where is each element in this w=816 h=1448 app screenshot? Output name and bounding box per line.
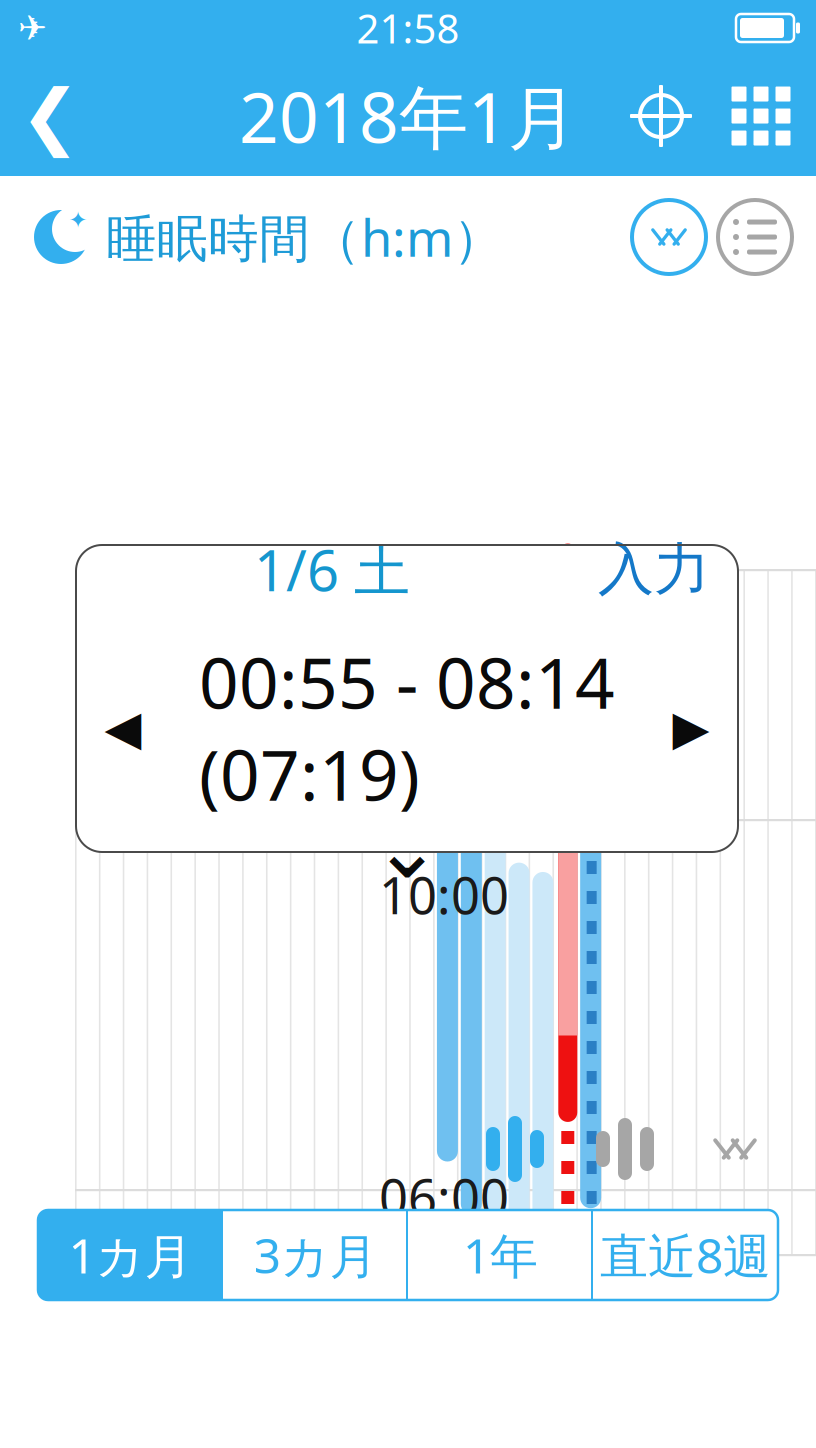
button[interactable]: Back [0, 56, 100, 176]
staticText: 1年 [463, 1223, 538, 1287]
button[interactable]: Grid [706, 56, 816, 176]
staticText: 21:58 [356, 1, 459, 54]
staticText: 直近8週 [600, 1223, 771, 1287]
button[interactable]: Line chart [680, 1109, 790, 1189]
button[interactable]: 3カ月 [223, 1210, 408, 1300]
staticText: 06:00 [379, 1163, 509, 1230]
staticText: 1/6 土 [254, 532, 410, 607]
button[interactable]: 直近8週 [593, 1210, 778, 1300]
staticText: 睡眠時間（h:m） [106, 203, 504, 271]
button[interactable]: 1カ月 [38, 1210, 223, 1300]
button[interactable]: List view [712, 194, 798, 280]
button[interactable]: 入力 [588, 529, 720, 610]
staticText: ❮ [20, 75, 80, 157]
button[interactable]: Graph view [626, 194, 712, 280]
staticText: 10:00 [379, 861, 509, 928]
staticText: 3カ月 [253, 1223, 377, 1287]
staticText: ✦ [68, 207, 87, 233]
staticText: 1カ月 [68, 1223, 192, 1287]
staticText: 入力 [598, 535, 710, 604]
button[interactable]: Target [616, 56, 706, 176]
staticText: 00:55 - 08:14 (07:19) [199, 636, 615, 820]
staticText: ◀ [104, 701, 141, 755]
button[interactable]: 1年 [408, 1210, 593, 1300]
staticText: ✈ [18, 8, 47, 48]
button[interactable]: Collapse [357, 820, 457, 878]
button[interactable]: Bar chart [570, 1109, 680, 1189]
staticText: ▶ [672, 701, 709, 755]
button[interactable]: Previous day [88, 693, 158, 763]
staticText: 2018年1月 [239, 70, 577, 162]
button[interactable]: Next day [656, 693, 726, 763]
button[interactable]: Range bar chart [460, 1109, 570, 1189]
staticText: ⌄ [372, 802, 441, 896]
